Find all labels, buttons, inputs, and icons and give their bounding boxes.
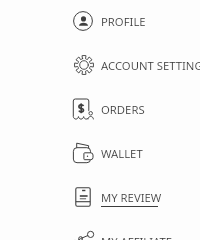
- staticText: WALLET: [101, 146, 143, 161]
- staticText: MY REVIEW: [101, 190, 162, 205]
- button[interactable]: WALLET: [0, 131, 200, 175]
- button[interactable]: MY REVIEW: [0, 175, 200, 219]
- button[interactable]: PROFILE: [0, 0, 200, 43]
- staticText: ACCOUNT SETTINGS: [101, 58, 200, 73]
- staticText: ORDERS: [101, 102, 145, 117]
- staticText: MY AFFILIATE: [101, 234, 173, 240]
- staticText: PROFILE: [101, 14, 146, 29]
- button[interactable]: ORDERS: [0, 87, 200, 131]
- button[interactable]: MY AFFILIATE: [0, 219, 200, 240]
- button[interactable]: ACCOUNT SETTINGS: [0, 43, 200, 87]
